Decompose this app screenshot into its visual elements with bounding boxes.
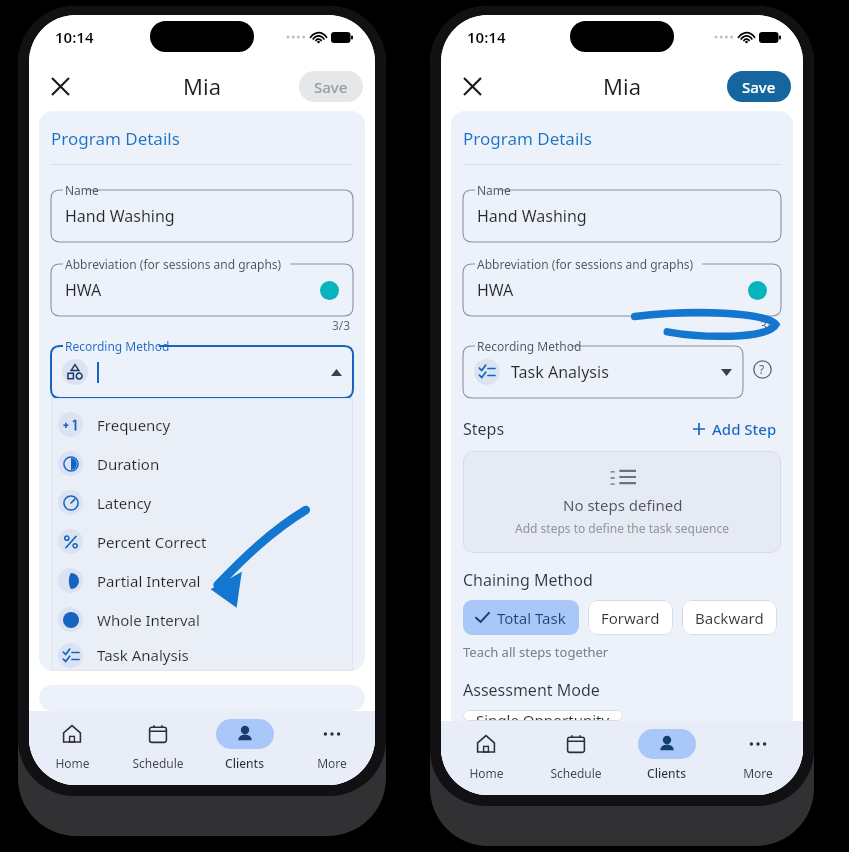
staticText: 3/3 — [332, 317, 351, 333]
button[interactable]: Duration — [51, 444, 353, 483]
staticText: Home — [55, 755, 90, 771]
button[interactable]: Backward — [682, 600, 777, 635]
staticText: Mia — [603, 71, 641, 101]
staticText: Program Details — [51, 127, 180, 150]
button[interactable]: Total Task — [463, 600, 579, 635]
button[interactable]: Single Opportunity — [463, 710, 623, 721]
staticText: Teach all steps together — [463, 643, 609, 661]
staticText: Hand Washing — [65, 205, 175, 227]
button[interactable]: Home — [29, 711, 115, 785]
staticText: Total Task — [497, 608, 566, 628]
staticText: Mia — [183, 71, 221, 101]
staticText: Percent Correct — [97, 532, 207, 552]
staticText: Duration — [97, 454, 160, 474]
button[interactable]: Frequency — [51, 405, 353, 444]
button[interactable]: Clients — [621, 721, 712, 795]
staticText: Clients — [225, 755, 264, 771]
staticText: Hand Washing — [477, 205, 587, 227]
button[interactable]: More — [288, 711, 375, 785]
staticText: Add steps to define the task sequence — [515, 520, 730, 536]
staticText: Forward — [601, 608, 660, 628]
staticText: Program Details — [463, 127, 592, 150]
staticText: Name — [477, 182, 511, 198]
button[interactable]: Add Step — [689, 416, 781, 442]
button[interactable]: Latency — [51, 483, 353, 522]
staticText: ? — [759, 361, 765, 377]
button[interactable]: Recording Method — [463, 339, 743, 398]
button[interactable]: Close — [39, 65, 81, 107]
button[interactable]: Save — [727, 71, 791, 102]
button[interactable]: Schedule — [531, 721, 621, 795]
button[interactable]: Recording Method — [51, 339, 353, 398]
button[interactable]: Pick colour — [748, 281, 767, 300]
button[interactable]: More — [712, 721, 803, 795]
button[interactable]: Close — [451, 65, 493, 107]
button[interactable]: Task Analysis — [51, 639, 353, 671]
staticText: Schedule — [550, 765, 602, 781]
staticText: More — [317, 755, 347, 771]
staticText: Frequency — [97, 415, 171, 435]
staticText: Recording Method — [65, 338, 170, 354]
button[interactable]: Schedule — [115, 711, 201, 785]
button[interactable]: Forward — [588, 600, 673, 635]
staticText: More — [743, 765, 773, 781]
staticText: 10:14 — [55, 27, 94, 47]
staticText: Recording Method — [477, 338, 582, 354]
staticText: Save — [742, 77, 776, 97]
staticText: Whole Interval — [97, 610, 200, 630]
button[interactable]: Whole Interval — [51, 600, 353, 639]
staticText: Abbreviation (for sessions and graphs) — [477, 256, 694, 272]
staticText: Home — [469, 765, 504, 781]
staticText: Chaining Method — [463, 569, 593, 591]
staticText: Name — [65, 182, 99, 198]
button[interactable]: Pick colour — [320, 281, 339, 300]
button[interactable]: Help — [743, 350, 781, 388]
button[interactable]: Partial Interval — [51, 561, 353, 600]
staticText: HWA — [477, 279, 514, 301]
staticText: Schedule — [132, 755, 184, 771]
staticText: No steps defined — [563, 495, 683, 515]
staticText: Backward — [695, 608, 764, 628]
staticText: Single Opportunity — [476, 710, 610, 721]
staticText: Clients — [647, 765, 686, 781]
staticText: Add Step — [712, 419, 777, 439]
staticText: 10:14 — [467, 27, 506, 47]
staticText: Task Analysis — [97, 645, 189, 665]
staticText: Task Analysis — [511, 361, 609, 383]
staticText: 3/3 — [760, 317, 779, 333]
staticText: Steps — [463, 418, 505, 440]
staticText: Abbreviation (for sessions and graphs) — [65, 256, 282, 272]
button[interactable]: Save — [299, 71, 363, 102]
staticText: Latency — [97, 493, 152, 513]
staticText: HWA — [65, 279, 102, 301]
button[interactable]: Percent Correct — [51, 522, 353, 561]
staticText: Save — [314, 77, 348, 97]
button[interactable]: Clients — [201, 711, 288, 785]
staticText: Assessment Mode — [463, 679, 600, 701]
staticText: Partial Interval — [97, 571, 201, 591]
button[interactable]: Home — [441, 721, 531, 795]
